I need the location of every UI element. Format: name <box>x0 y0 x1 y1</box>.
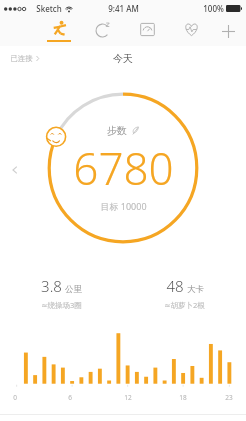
staticText: 12 <box>124 393 132 402</box>
staticText: 3.8 <box>41 276 62 296</box>
staticText: 大卡 <box>187 284 204 295</box>
button[interactable]: 3.8 <box>0 276 123 310</box>
staticText: 48 <box>166 276 184 296</box>
staticText: 18 <box>179 393 187 402</box>
staticText: 步数 <box>107 124 127 137</box>
staticText: 0 <box>13 393 17 402</box>
staticText: ≈胡萝卜2根 <box>164 300 205 310</box>
button[interactable]: Heart rate <box>178 16 204 46</box>
staticText: 6 <box>68 393 72 402</box>
staticText: 100% <box>203 3 224 14</box>
button[interactable]: Sleep <box>90 16 116 46</box>
staticText: 9:41 AM <box>108 3 139 14</box>
button[interactable]: 48 <box>123 276 246 310</box>
button[interactable]: Weight <box>134 16 160 46</box>
staticText: 公里 <box>65 284 82 295</box>
staticText: Sketch <box>36 3 62 14</box>
staticText: 已连接 <box>10 54 33 63</box>
staticText: ≈绕操场3圈 <box>41 300 82 310</box>
button[interactable]: Steps <box>46 16 72 46</box>
staticText: 今天 <box>113 52 133 65</box>
staticText: 目标 10000 <box>100 200 147 212</box>
button[interactable]: Add <box>214 17 242 45</box>
staticText: 23 <box>225 393 233 402</box>
button[interactable]: 已连接 <box>10 54 40 63</box>
staticText: 6780 <box>73 138 174 198</box>
button[interactable]: Previous day <box>4 159 26 181</box>
